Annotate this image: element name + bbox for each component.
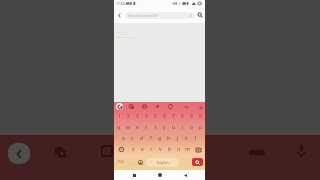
button[interactable]: e [133, 122, 142, 133]
button[interactable]: v [156, 144, 165, 155]
staticText: y [163, 124, 166, 131]
button[interactable]: x [138, 144, 147, 155]
button[interactable]: More options [247, 145, 266, 159]
button[interactable]: Clipboard [167, 103, 174, 110]
button[interactable]: Back [180, 170, 190, 180]
staticText: i [182, 124, 184, 131]
button[interactable]: w [124, 122, 133, 133]
staticText: g [158, 135, 162, 142]
button[interactable]: Screenshot [53, 144, 68, 160]
staticText: m [185, 146, 190, 153]
button[interactable]: n [174, 144, 183, 155]
staticText: 4 [145, 113, 148, 120]
button[interactable]: Emoji [100, 144, 114, 158]
button[interactable]: Back [8, 143, 30, 164]
button[interactable]: t [151, 122, 160, 133]
button[interactable]: i [178, 122, 187, 133]
button[interactable]: 0 [196, 111, 205, 122]
button[interactable]: c [147, 144, 156, 155]
button[interactable]: h [164, 133, 173, 144]
button[interactable]: More [183, 103, 190, 110]
staticText: 3 [136, 113, 139, 120]
staticText: p [199, 124, 203, 131]
staticText: x [141, 146, 144, 153]
button[interactable]: u [169, 122, 178, 133]
button[interactable]: o [187, 122, 196, 133]
staticText: Search in account ID [128, 14, 158, 18]
staticText: . [182, 159, 184, 165]
staticText: q [117, 124, 121, 131]
staticText: c [150, 146, 153, 153]
button[interactable]: 5 [151, 111, 160, 122]
button[interactable]: s [128, 133, 137, 144]
staticText: w [126, 124, 131, 131]
button[interactable]: 2 [124, 111, 133, 122]
staticText: 8 [181, 113, 184, 120]
button[interactable]: English [146, 158, 179, 167]
button[interactable]: Microphone [295, 142, 308, 160]
staticText: a [122, 135, 125, 142]
button[interactable]: Home [155, 170, 165, 180]
staticText: b [168, 146, 172, 153]
button[interactable]: Search in account ID [125, 12, 194, 19]
button[interactable]: m [183, 144, 192, 155]
staticText: l [195, 135, 197, 142]
button[interactable]: ?123 [114, 155, 127, 169]
button[interactable]: g [155, 133, 164, 144]
staticText: s [131, 135, 134, 142]
button[interactable]: p [196, 122, 205, 133]
button[interactable]: k [182, 133, 191, 144]
staticText: n [177, 146, 181, 153]
button[interactable]: Emoji [135, 155, 146, 169]
staticText: 1 [118, 113, 121, 120]
button[interactable]: Backspace [192, 144, 205, 155]
button[interactable]: 4 [142, 111, 151, 122]
button[interactable]: l [191, 133, 200, 144]
staticText: 11:04 AM [116, 1, 131, 6]
button[interactable]: j [173, 133, 182, 144]
button[interactable]: r [142, 122, 151, 133]
staticText: English [157, 160, 169, 165]
button[interactable]: Search [194, 8, 205, 22]
button[interactable]: f [146, 133, 155, 144]
staticText: 5 [154, 113, 157, 120]
staticText: e [136, 124, 139, 131]
staticText: j [177, 135, 179, 142]
button[interactable]: q [114, 122, 124, 133]
button[interactable]: Shift [114, 144, 128, 155]
staticText: ?123 [117, 160, 124, 164]
staticText: v [159, 146, 162, 153]
button[interactable]: 8 [178, 111, 187, 122]
button[interactable]: . [179, 155, 186, 169]
button[interactable]: Stickers [128, 103, 135, 110]
button[interactable]: d [137, 133, 146, 144]
staticText: 2 [127, 113, 130, 120]
button[interactable]: 7 [169, 111, 178, 122]
button[interactable]: Back [114, 8, 125, 22]
button[interactable]: b [165, 144, 174, 155]
staticText: o [190, 124, 194, 131]
button[interactable]: 1 [114, 111, 124, 122]
button[interactable]: GIF [141, 103, 148, 110]
staticText: z [132, 146, 135, 153]
button[interactable]: Themes [154, 103, 161, 110]
staticText: 6 [163, 113, 166, 120]
button[interactable]: 3 [133, 111, 142, 122]
button[interactable]: 9 [187, 111, 196, 122]
button[interactable]: y [160, 122, 169, 133]
button[interactable]: a [119, 133, 128, 144]
staticText: u [172, 124, 176, 131]
staticText: k [185, 135, 188, 142]
button[interactable]: z [128, 144, 138, 155]
button[interactable]: 6 [160, 111, 169, 122]
button[interactable]: Hide keyboard [197, 103, 204, 110]
staticText: r [145, 124, 148, 131]
staticText: f [150, 135, 152, 142]
button[interactable]: , [127, 155, 135, 169]
button[interactable]: Recents [129, 170, 139, 180]
staticText: 7 [172, 113, 175, 120]
button[interactable]: Google Assistant [116, 103, 123, 110]
staticText: 0 [199, 113, 202, 120]
staticText: d [140, 135, 144, 142]
button[interactable]: Search [192, 158, 203, 166]
